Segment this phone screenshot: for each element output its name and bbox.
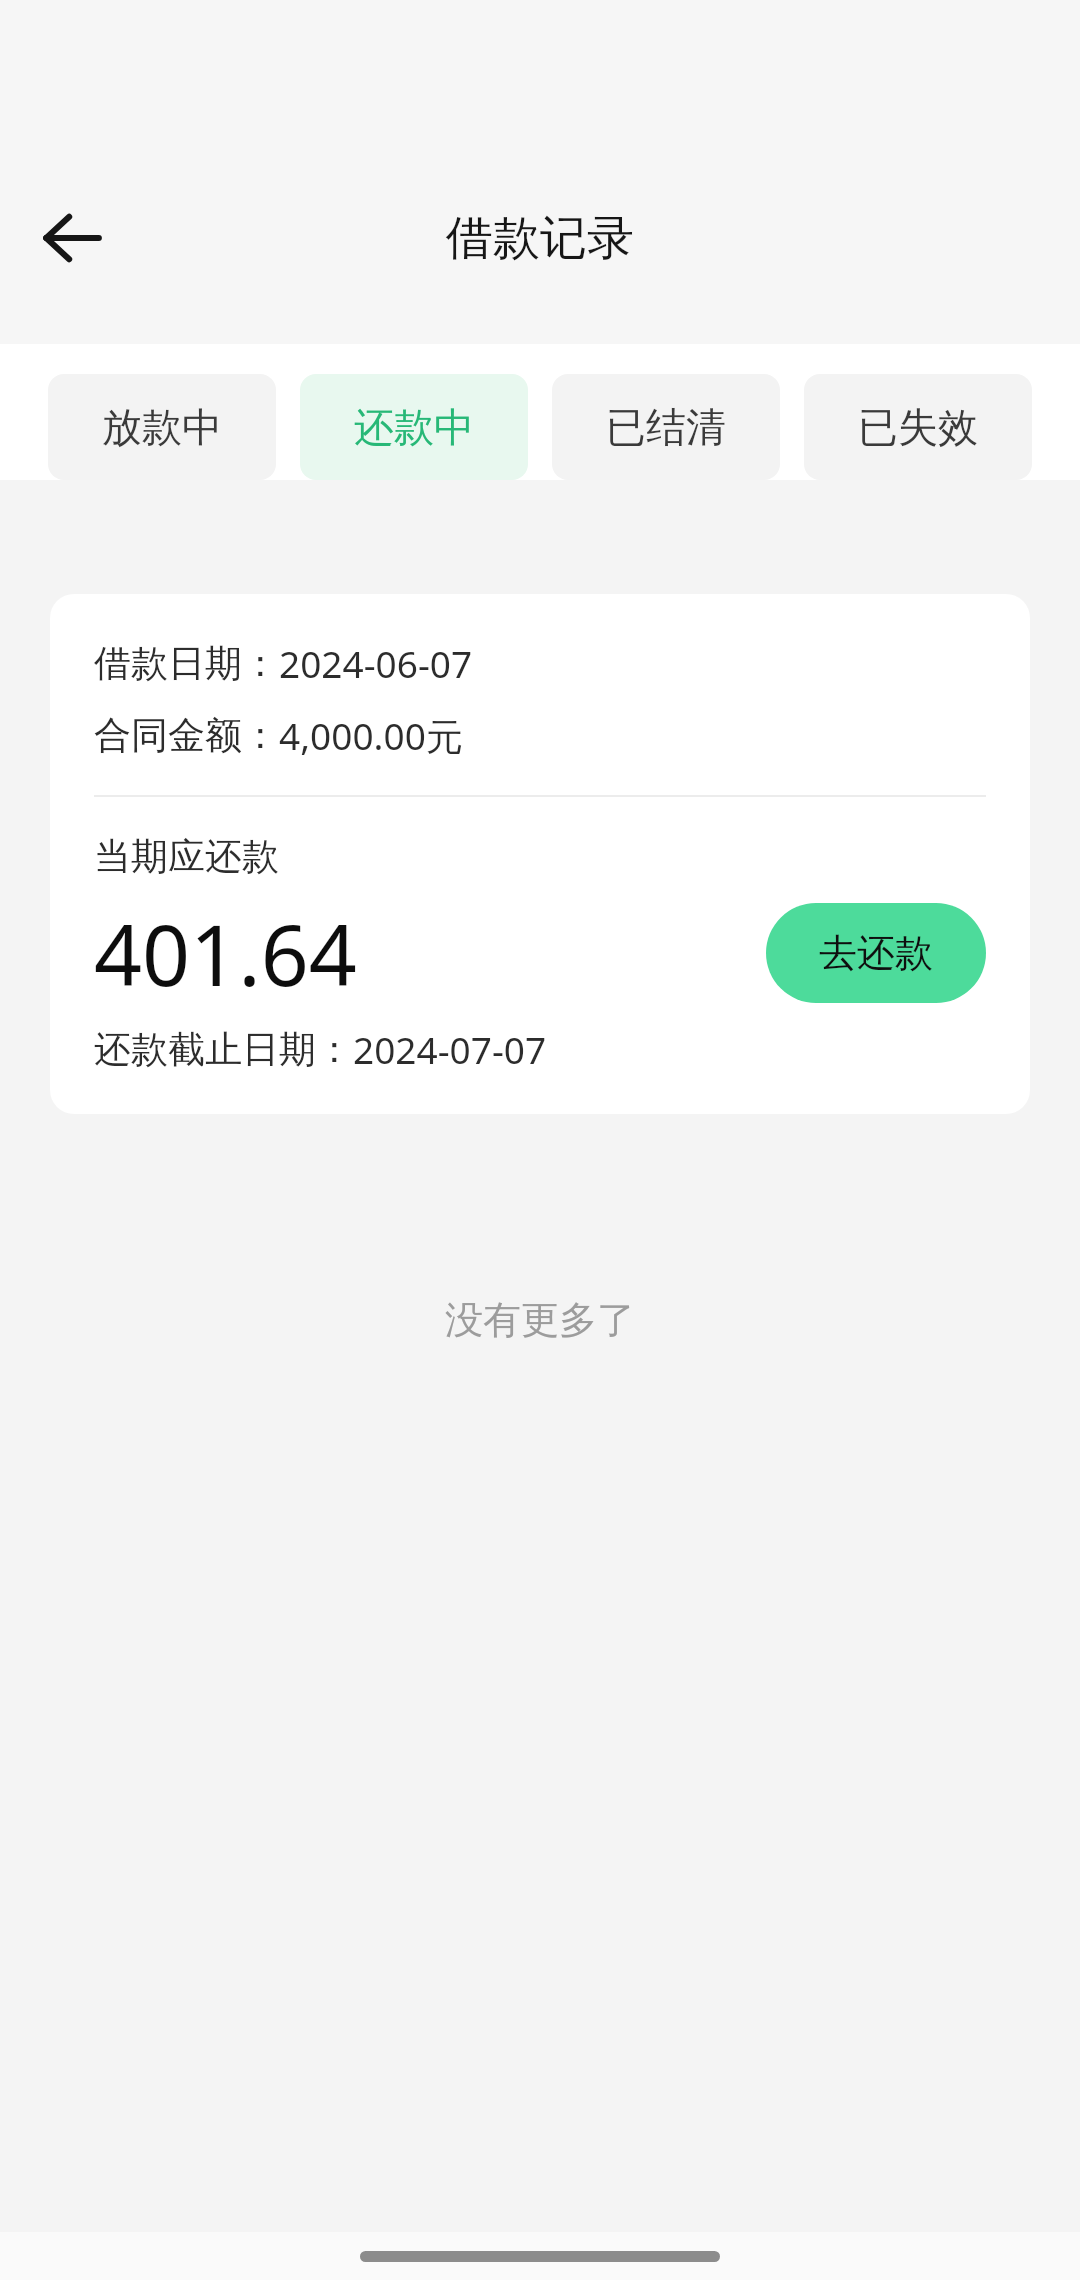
staticText: 没有更多了	[445, 1296, 635, 1344]
staticText: 已结清	[606, 402, 726, 452]
staticText: 还款中	[354, 402, 474, 452]
staticText: 4,000.00元	[279, 710, 463, 761]
staticText: 借款记录	[446, 209, 634, 268]
button[interactable]: 还款中	[300, 374, 528, 480]
staticText: 放款中	[102, 402, 222, 452]
staticText: 借款日期：	[94, 640, 279, 687]
staticText: 当期应还款	[94, 833, 279, 880]
button[interactable]: 借款日期：	[50, 594, 1030, 1114]
button[interactable]: 已结清	[552, 374, 780, 480]
button[interactable]: Back	[24, 190, 120, 286]
staticText: 已失效	[858, 402, 978, 452]
staticText: 去还款	[819, 929, 933, 977]
staticText: 2024-06-07	[279, 638, 473, 688]
button[interactable]: 放款中	[48, 374, 276, 480]
staticText: 2024-07-07	[353, 1024, 547, 1074]
staticText: 401.64	[94, 896, 357, 1010]
staticText: 还款截止日期：	[94, 1026, 353, 1073]
staticText: 合同金额：	[94, 712, 279, 759]
button[interactable]: 去还款	[766, 903, 986, 1003]
button[interactable]: 已失效	[804, 374, 1032, 480]
